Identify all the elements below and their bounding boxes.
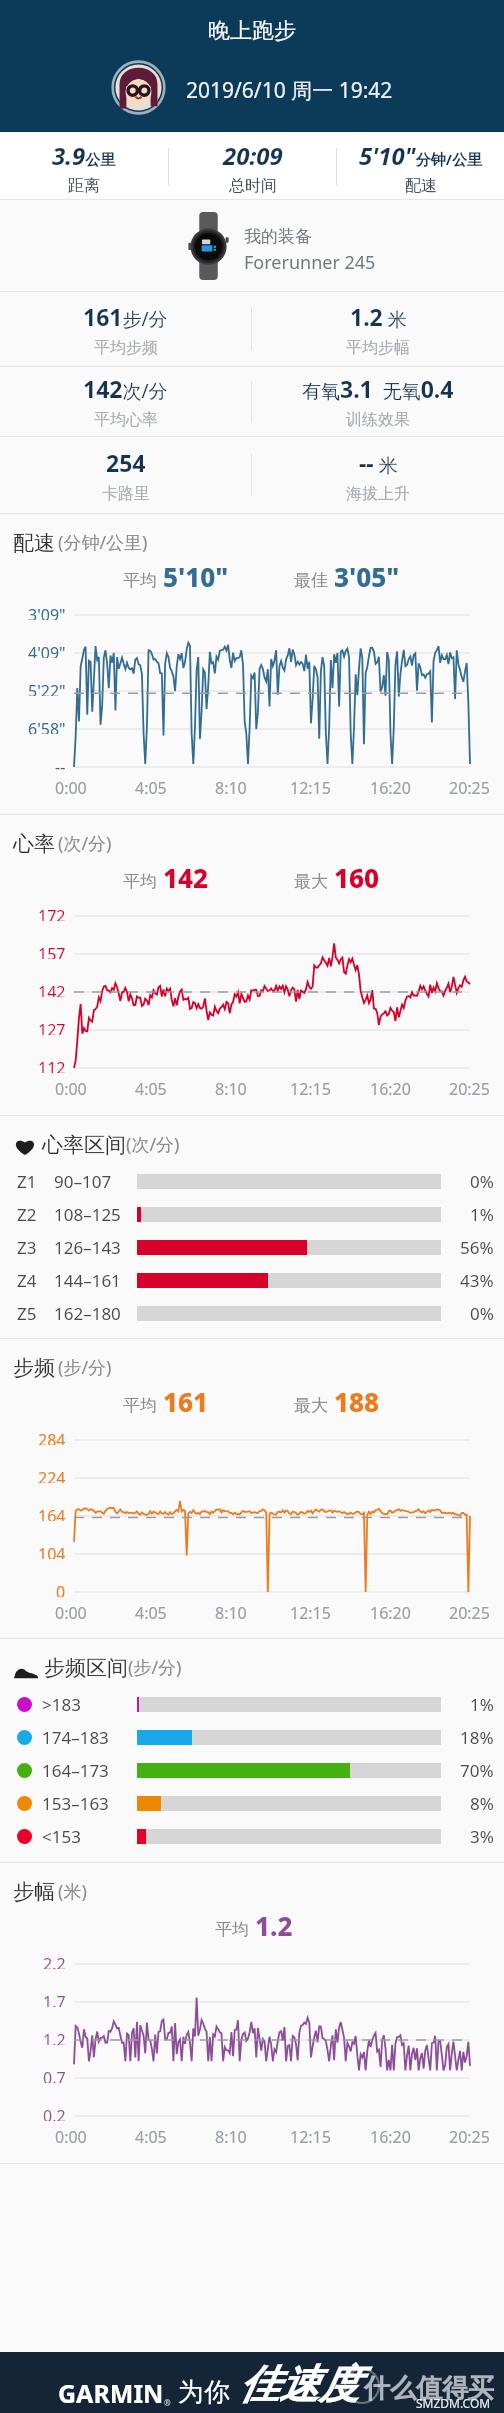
staticText: -- 米: [359, 447, 398, 478]
staticText: 步幅: [13, 1879, 55, 1905]
staticText: 配速: [13, 530, 55, 556]
button[interactable]: 20:09: [169, 139, 336, 196]
staticText: 161步/分: [83, 301, 168, 332]
staticText: GARMIN: [58, 2376, 164, 2410]
staticText: 0.2: [43, 2105, 66, 2121]
staticText: 254: [106, 447, 146, 478]
staticText: 心率区间: [42, 1132, 126, 1158]
staticText: 2.2: [43, 1953, 66, 1969]
staticText: 步频: [13, 1355, 55, 1381]
staticText: 16:20: [370, 2126, 411, 2147]
staticText: 20:25: [449, 777, 490, 798]
staticText: 平均心率: [94, 410, 158, 430]
button[interactable]: 3.9公里: [0, 139, 168, 196]
staticText: 284: [38, 1429, 66, 1445]
staticText: Z2: [17, 1203, 54, 1226]
button[interactable]: 161步/分: [0, 301, 251, 358]
staticText: 平均步幅: [346, 338, 410, 358]
staticText: 0%: [470, 1302, 494, 1325]
button[interactable]: 153–163: [17, 1787, 494, 1820]
staticText: 1.2 米: [350, 301, 407, 332]
button[interactable]: 142次/分: [0, 373, 251, 430]
other: User avatar: [111, 60, 166, 115]
staticText: 20:25: [449, 1602, 490, 1623]
button[interactable]: 步频: [0, 1339, 504, 1638]
staticText: (米): [58, 1879, 87, 1904]
staticText: 5'22": [28, 680, 66, 696]
button[interactable]: 步幅: [0, 1863, 504, 2163]
staticText: Z4: [17, 1269, 54, 1292]
staticText: 161: [163, 1384, 209, 1419]
staticText: 总时间: [229, 176, 277, 196]
button[interactable]: Z1: [17, 1165, 494, 1198]
staticText: 164: [38, 1505, 66, 1521]
staticText: 16:20: [370, 1078, 411, 1099]
staticText: 4:05: [135, 1602, 167, 1623]
staticText: 为你: [178, 2376, 230, 2409]
staticText: 1.2: [43, 2029, 66, 2045]
button[interactable]: Z2: [17, 1198, 494, 1231]
staticText: 8:10: [215, 777, 247, 798]
staticText: 什么值得买: [364, 2372, 494, 2405]
button[interactable]: Z4: [17, 1264, 494, 1297]
staticText: 174–183: [42, 1726, 137, 1749]
staticText: 2019/6/10 周一 19:42: [186, 76, 393, 105]
staticText: 1%: [470, 1693, 494, 1716]
staticText: 104: [38, 1543, 66, 1559]
staticText: 4'09": [28, 642, 66, 658]
staticText: 0:00: [55, 2126, 87, 2147]
button[interactable]: 5'10"分钟/公里: [337, 139, 504, 196]
staticText: 最大: [294, 871, 328, 892]
staticText: 70%: [460, 1759, 494, 1782]
staticText: 距离: [68, 176, 100, 196]
staticText: 0:00: [55, 777, 87, 798]
staticText: 127: [38, 1019, 66, 1035]
staticText: 126–143: [54, 1236, 137, 1259]
staticText: (次/分): [58, 831, 112, 856]
staticText: 90–107: [54, 1170, 137, 1193]
staticText: 1%: [470, 1203, 494, 1226]
button[interactable]: -- 米: [252, 447, 504, 504]
staticText: 1.2: [255, 1908, 293, 1943]
staticText: (次/分): [126, 1132, 180, 1157]
staticText: 3'09": [28, 604, 66, 620]
button[interactable]: 164–173: [17, 1754, 494, 1787]
staticText: 16:20: [370, 777, 411, 798]
button[interactable]: Z5: [17, 1297, 494, 1330]
staticText: 3.9公里: [52, 139, 116, 172]
staticText: 6'58": [28, 718, 66, 734]
staticText: 最大: [294, 1395, 328, 1416]
staticText: 108–125: [54, 1203, 137, 1226]
button[interactable]: 254: [0, 447, 251, 504]
staticText: 0:00: [55, 1602, 87, 1623]
button[interactable]: GARMIN: [0, 2352, 504, 2413]
button[interactable]: Forerunner 245 watch: [0, 200, 504, 291]
staticText: 162–180: [54, 1302, 137, 1325]
button[interactable]: 有氧3.1 无氧0.4: [252, 373, 504, 430]
staticText: 224: [38, 1467, 66, 1483]
staticText: 16:20: [370, 1602, 411, 1623]
staticText: 0.7: [43, 2067, 66, 2083]
staticText: 有氧3.1 无氧0.4: [302, 373, 454, 404]
button[interactable]: 心率: [0, 815, 504, 1115]
staticText: --: [55, 756, 66, 772]
staticText: 157: [38, 943, 66, 959]
staticText: 8:10: [215, 2126, 247, 2147]
staticText: 4:05: [135, 777, 167, 798]
staticText: (步/分): [58, 1355, 112, 1380]
staticText: 训练效果: [346, 410, 410, 430]
button[interactable]: 配速: [0, 514, 504, 814]
button[interactable]: <153: [17, 1820, 494, 1853]
other: Forerunner 245 watch: [190, 212, 227, 280]
staticText: 12:15: [290, 777, 331, 798]
staticText: 188: [334, 1384, 380, 1419]
staticText: 12:15: [290, 2126, 331, 2147]
button[interactable]: 1.2 米: [252, 301, 504, 358]
button[interactable]: 174–183: [17, 1721, 494, 1754]
staticText: Z3: [17, 1236, 54, 1259]
button[interactable]: >183: [17, 1688, 494, 1721]
staticText: 平均: [123, 1395, 157, 1416]
button[interactable]: Z3: [17, 1231, 494, 1264]
staticText: 56%: [460, 1236, 494, 1259]
staticText: 18%: [460, 1726, 494, 1749]
